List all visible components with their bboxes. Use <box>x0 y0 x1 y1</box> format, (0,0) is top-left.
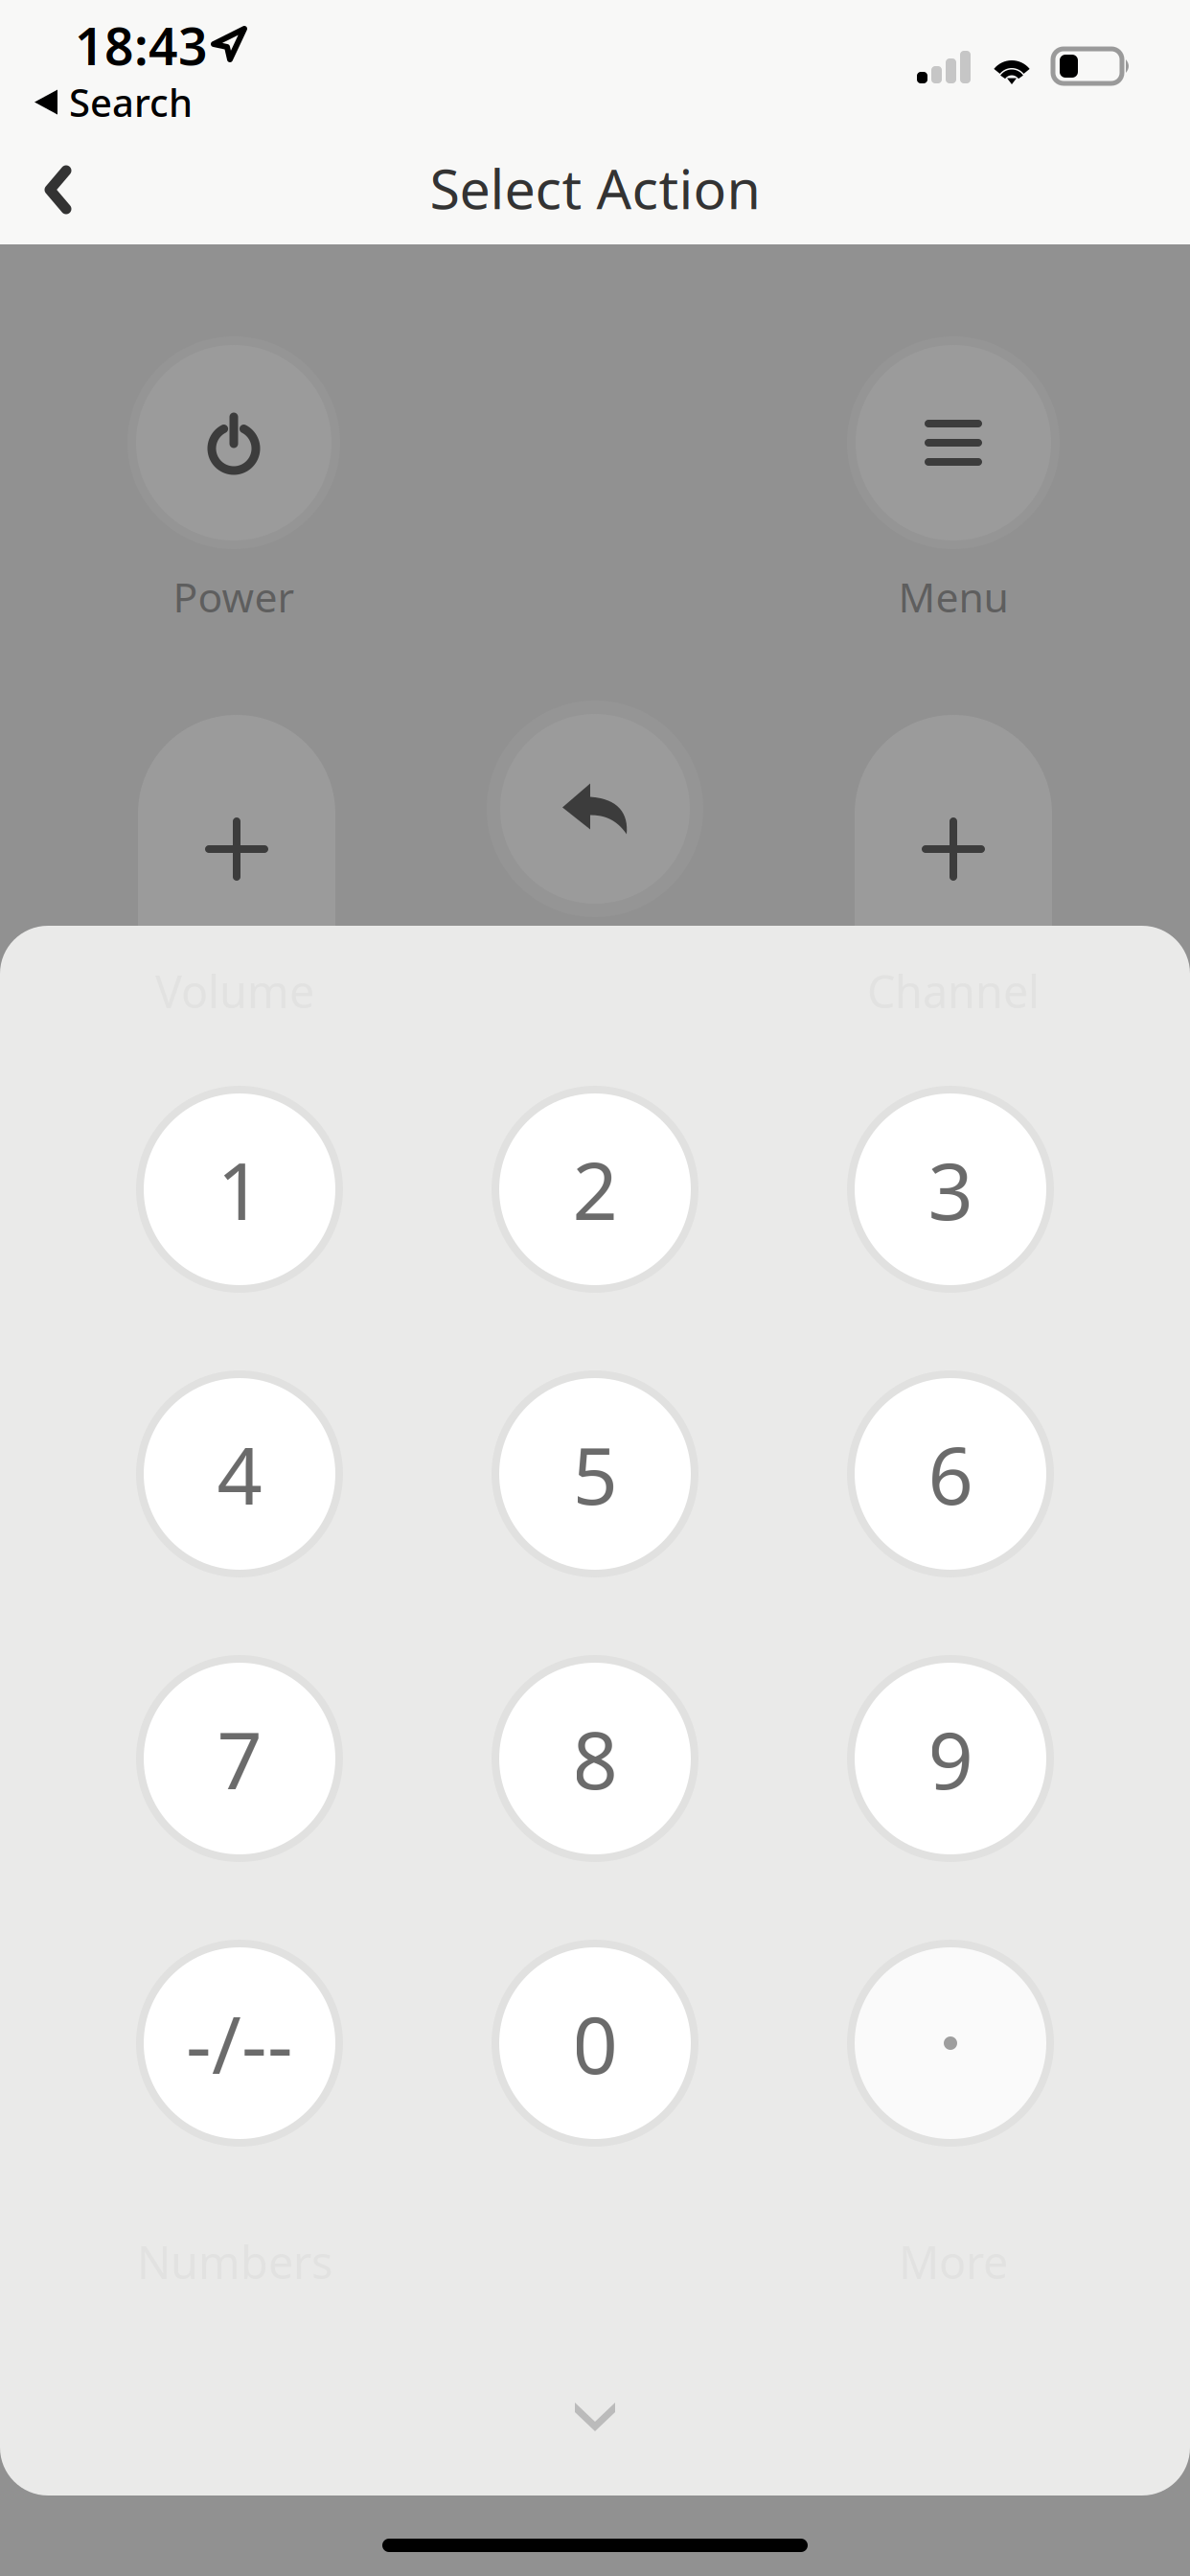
button[interactable]: Collapse <box>541 2369 649 2457</box>
staticText: Search <box>69 77 193 128</box>
button[interactable]: 4 <box>136 1370 343 1577</box>
staticText: 6 <box>928 1421 973 1527</box>
button[interactable]: 5 <box>492 1370 698 1577</box>
staticText: Menu <box>898 569 1008 624</box>
staticText: 7 <box>217 1706 262 1811</box>
staticText: 0 <box>572 1991 618 2096</box>
button[interactable]: 7 <box>136 1655 343 1862</box>
button[interactable]: 6 <box>847 1370 1054 1577</box>
button[interactable]: Power <box>136 345 332 624</box>
button[interactable]: 9 <box>847 1655 1054 1862</box>
staticText: Select Action <box>430 151 760 224</box>
button[interactable] <box>487 701 703 917</box>
button[interactable]: 3 <box>847 1086 1054 1293</box>
staticText: Power <box>173 569 295 624</box>
button[interactable]: 8 <box>492 1655 698 1862</box>
staticText: 9 <box>928 1706 973 1811</box>
staticText: -/-- <box>186 1991 293 2096</box>
staticText: 1 <box>217 1137 262 1242</box>
staticText: 18:43 <box>75 11 208 79</box>
staticText: 5 <box>572 1421 618 1527</box>
button[interactable]: Menu <box>856 345 1051 624</box>
button[interactable] <box>855 715 1052 1165</box>
button[interactable]: -/-- <box>136 1940 343 2147</box>
button[interactable] <box>847 1940 1054 2147</box>
staticText: 8 <box>572 1706 618 1811</box>
button[interactable]: 2 <box>492 1086 698 1293</box>
button[interactable]: Back <box>11 139 106 241</box>
button[interactable] <box>138 715 335 1165</box>
staticText: 4 <box>217 1421 262 1527</box>
staticText: 2 <box>572 1137 618 1242</box>
button[interactable]: 1 <box>136 1086 343 1293</box>
button[interactable]: 0 <box>492 1940 698 2147</box>
staticText: 3 <box>928 1137 973 1242</box>
button[interactable]: Search <box>34 77 193 128</box>
